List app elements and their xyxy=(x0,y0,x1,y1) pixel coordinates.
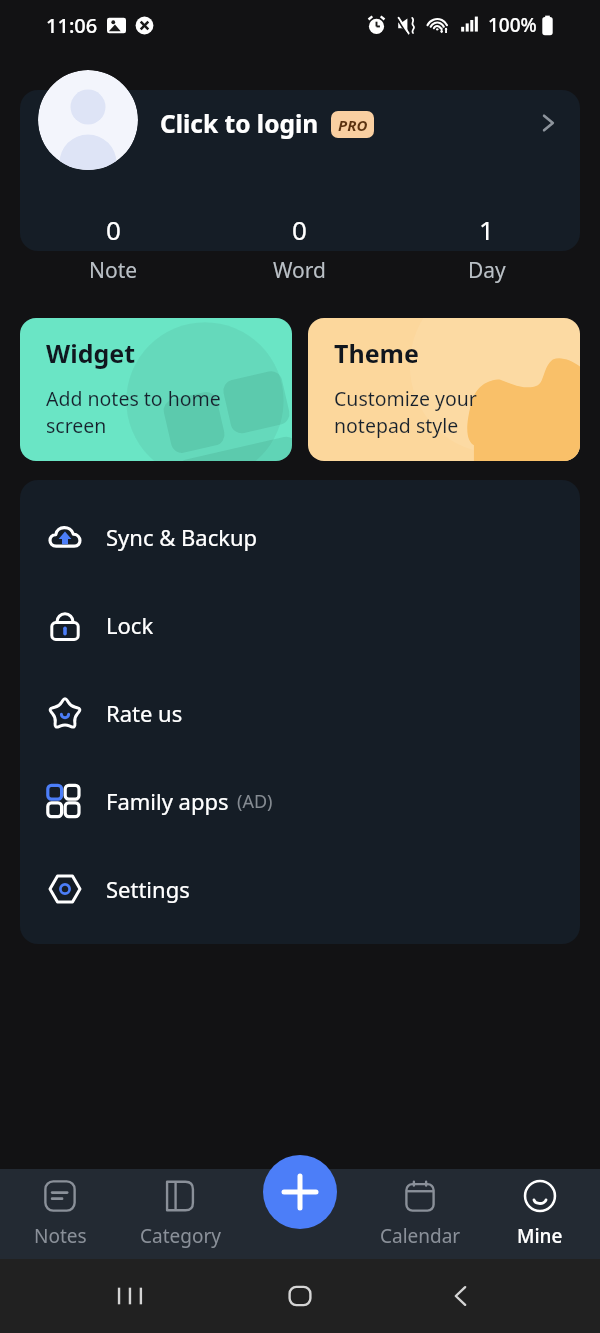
staticText: Click to login xyxy=(160,107,319,140)
staticText: Day xyxy=(468,256,506,285)
staticText: Rate us xyxy=(106,698,183,728)
staticText: Theme xyxy=(334,336,419,370)
button[interactable]: 1 xyxy=(393,212,580,285)
staticText: 11:06 xyxy=(46,12,98,39)
staticText: Note xyxy=(89,256,138,285)
staticText: 0 xyxy=(106,212,121,247)
staticText: Calendar xyxy=(380,1223,461,1249)
button[interactable]: Back xyxy=(435,1270,487,1322)
staticText: Mine xyxy=(517,1223,563,1249)
button[interactable]: Mine xyxy=(480,1169,600,1259)
button[interactable]: Home xyxy=(274,1270,326,1322)
staticText: 1 xyxy=(479,212,494,247)
button[interactable]: Notes xyxy=(0,1169,120,1259)
button[interactable]: Add note xyxy=(263,1155,337,1229)
button[interactable]: Calendar xyxy=(360,1169,480,1259)
button[interactable]: 0 xyxy=(206,212,393,285)
staticText: Notes xyxy=(34,1223,87,1249)
button[interactable]: Settings xyxy=(20,845,580,933)
staticText: Category xyxy=(140,1223,221,1249)
button[interactable]: Family apps xyxy=(20,757,580,845)
button[interactable]: Open profile xyxy=(537,112,559,134)
button[interactable]: Recents xyxy=(105,1270,157,1322)
button[interactable]: Widget xyxy=(20,318,292,461)
staticText: PRO xyxy=(338,115,368,135)
staticText: Lock xyxy=(106,610,154,640)
staticText: (AD) xyxy=(237,789,273,814)
staticText: Family apps xyxy=(106,786,229,816)
button[interactable]: Theme xyxy=(308,318,580,461)
staticText: Sync & Backup xyxy=(106,522,258,552)
staticText: Customize your notepad style xyxy=(334,385,477,439)
staticText: 0 xyxy=(292,212,307,247)
button[interactable]: 0 xyxy=(20,212,206,285)
staticText: Add notes to home screen xyxy=(46,385,221,439)
button[interactable]: Category xyxy=(120,1169,240,1259)
staticText: 100% xyxy=(488,12,537,38)
staticText: Settings xyxy=(106,874,190,904)
staticText: Word xyxy=(273,256,326,285)
button[interactable]: Rate us xyxy=(20,669,580,757)
button[interactable] xyxy=(20,90,580,251)
button[interactable]: Lock xyxy=(20,581,580,669)
button[interactable]: Sync & Backup xyxy=(20,493,580,581)
staticText: Widget xyxy=(46,336,136,370)
